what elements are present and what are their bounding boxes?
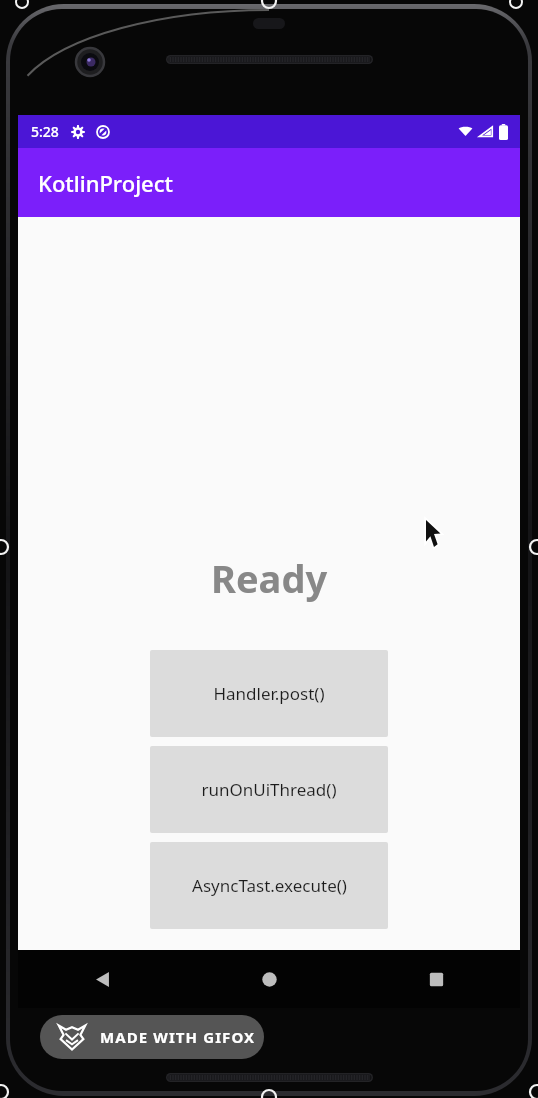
staticText: Ready bbox=[211, 552, 328, 604]
button[interactable]: AsyncTast.execute() bbox=[150, 842, 388, 929]
staticText: 5:28 bbox=[31, 122, 59, 141]
staticText: KotlinProject bbox=[38, 168, 173, 198]
button[interactable]: runOnUiThread() bbox=[150, 746, 388, 833]
button[interactable]: Recent apps bbox=[353, 950, 520, 1008]
staticText: AsyncTast.execute() bbox=[192, 874, 347, 897]
button[interactable]: KotlinProject bbox=[18, 148, 520, 217]
button[interactable]: Home bbox=[186, 950, 353, 1008]
staticText: Handler.post() bbox=[213, 682, 325, 705]
button[interactable]: Handler.post() bbox=[150, 650, 388, 737]
staticText: runOnUiThread() bbox=[201, 778, 337, 801]
button[interactable]: Back bbox=[18, 950, 186, 1008]
staticText: MADE WITH GIFOX bbox=[100, 1027, 256, 1047]
other: Front camera bbox=[76, 48, 104, 76]
